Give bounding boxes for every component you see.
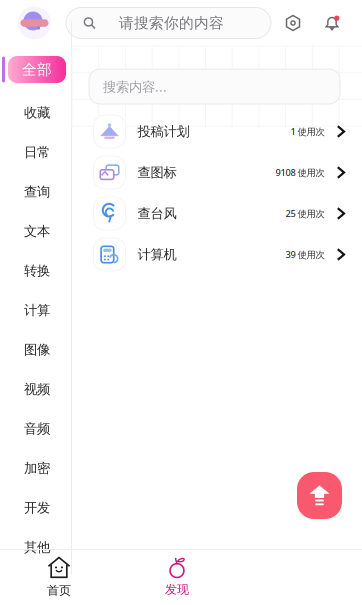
staticText: 计算 <box>24 302 50 318</box>
button[interactable]: 投稿计划 <box>72 111 362 152</box>
staticText: 图像 <box>24 342 50 358</box>
staticText: 投稿计划 <box>137 123 189 140</box>
staticText: 日常 <box>24 144 50 160</box>
staticText: 查询 <box>24 184 50 200</box>
staticText: 39 使用次 <box>285 248 324 261</box>
staticText: 搜索内容... <box>103 78 167 95</box>
staticText: 查台风 <box>137 205 176 222</box>
button[interactable]: 开发 <box>0 488 72 527</box>
button[interactable]: 加密 <box>0 448 72 488</box>
button[interactable]: 请搜索你的内容 <box>66 7 271 38</box>
staticText: 1 使用次 <box>290 125 324 138</box>
staticText: 9108 使用次 <box>275 166 324 179</box>
button[interactable]: 计算 <box>0 290 72 330</box>
button[interactable]: 转换 <box>0 251 72 290</box>
button[interactable]: 首页 <box>0 552 118 602</box>
staticText: 25 使用次 <box>285 207 324 220</box>
button[interactable]: 视频 <box>0 369 72 409</box>
staticText: 首页 <box>47 583 71 598</box>
button[interactable]: 全部 <box>0 20 72 93</box>
button[interactable]: 计算机 <box>72 234 362 275</box>
button[interactable]: 查询 <box>0 172 72 211</box>
staticText: 请搜索你的内容 <box>119 14 224 32</box>
button[interactable]: 图像 <box>0 330 72 369</box>
button[interactable]: 收藏 <box>0 93 72 132</box>
button[interactable]: 发现 <box>118 552 236 602</box>
button[interactable]: 日常 <box>0 132 72 172</box>
staticText: 加密 <box>24 460 50 476</box>
staticText: 其他 <box>24 539 50 555</box>
button[interactable]: 查台风 <box>72 193 362 234</box>
staticText: 发现 <box>165 582 189 597</box>
staticText: 收藏 <box>24 105 50 121</box>
button[interactable]: 查图标 <box>72 152 362 193</box>
button[interactable]: Notifications <box>324 15 340 31</box>
staticText: 计算机 <box>137 246 176 263</box>
button[interactable]: Settings <box>285 15 301 31</box>
button[interactable]: 文本 <box>0 211 72 251</box>
staticText: 文本 <box>24 223 50 239</box>
staticText: 查图标 <box>137 164 176 181</box>
button[interactable]: Upload <box>297 472 342 519</box>
button[interactable]: Profile <box>17 5 52 40</box>
staticText: 音频 <box>24 421 50 437</box>
staticText: 全部 <box>22 60 52 78</box>
staticText: 转换 <box>24 263 50 279</box>
staticText: 开发 <box>24 500 50 516</box>
button[interactable]: 其他 <box>0 527 72 567</box>
staticText: 视频 <box>24 381 50 397</box>
button[interactable]: 音频 <box>0 409 72 448</box>
